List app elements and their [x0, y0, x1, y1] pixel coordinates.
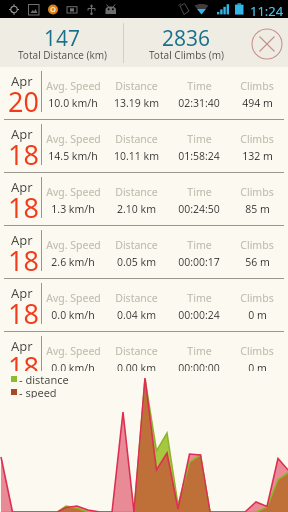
staticText: Avg. Speed [46, 344, 101, 358]
staticText: 56 m [245, 255, 270, 269]
staticText: Time [187, 79, 212, 93]
staticText: Apr [11, 337, 33, 355]
button[interactable]: 147 [2, 18, 123, 67]
staticText: 13.19 km [114, 96, 159, 110]
staticText: Distance [115, 344, 158, 358]
staticText: 494 m [242, 96, 273, 110]
staticText: 10.0 km/h [48, 96, 98, 110]
staticText: Distance [115, 291, 158, 305]
staticText: 0.04 km [117, 308, 156, 322]
staticText: Time [187, 238, 212, 252]
staticText: Apr [11, 231, 33, 249]
staticText: 00:00:00 [178, 361, 220, 371]
staticText: 147 [44, 24, 81, 53]
staticText: 11:24 [250, 2, 284, 20]
staticText: 1.3 km/h [51, 202, 95, 216]
staticText: 00:24:50 [178, 202, 220, 216]
staticText: Distance [115, 132, 158, 146]
staticText: Avg. Speed [46, 238, 101, 252]
button[interactable]: Apr [0, 226, 288, 278]
staticText: Avg. Speed [46, 291, 101, 305]
staticText: Avg. Speed [46, 79, 101, 93]
staticText: 02:31:40 [178, 96, 220, 110]
staticText: 18 [8, 295, 39, 332]
staticText: 85 m [245, 202, 270, 216]
staticText: Climbs [240, 79, 274, 93]
staticText: Distance [115, 238, 158, 252]
staticText: 0 m [248, 308, 267, 322]
staticText: 18 [8, 136, 39, 173]
button[interactable]: Apr [0, 279, 288, 331]
staticText: 18 [8, 348, 39, 371]
button[interactable]: Apr [0, 67, 288, 119]
staticText: 18 [8, 189, 39, 226]
button[interactable]: Apr [0, 120, 288, 172]
staticText: 0.05 km [117, 255, 156, 269]
staticText: 01:58:24 [178, 149, 220, 163]
staticText: Avg. Speed [46, 132, 101, 146]
staticText: Apr [11, 284, 33, 302]
staticText: Time [187, 132, 212, 146]
staticText: 0.0 km/h [51, 361, 95, 371]
staticText: Avg. Speed [46, 185, 101, 199]
staticText: Climbs [240, 238, 274, 252]
staticText: 132 m [242, 149, 273, 163]
staticText: Distance [115, 185, 158, 199]
staticText: 0.0 km/h [51, 308, 95, 322]
staticText: Climbs [240, 291, 274, 305]
button[interactable]: Apr [0, 332, 288, 371]
staticText: Apr [11, 178, 33, 196]
staticText: - distance [19, 372, 69, 385]
staticText: Total Climbs (m) [149, 48, 225, 62]
staticText: 2.6 km/h [51, 255, 95, 269]
staticText: Apr [11, 72, 33, 90]
staticText: 00:00:17 [178, 255, 220, 269]
button[interactable]: 2836 [124, 18, 249, 67]
staticText: 0 m [248, 361, 267, 371]
staticText: 10.11 km [114, 149, 159, 163]
staticText: 18 [8, 242, 39, 279]
staticText: Time [187, 344, 212, 358]
staticText: Distance [115, 79, 158, 93]
button[interactable]: Apr [0, 173, 288, 225]
staticText: 2836 [162, 24, 211, 53]
staticText: 14.5 km/h [48, 149, 98, 163]
staticText: 2.10 km [117, 202, 156, 216]
staticText: - speed [19, 385, 57, 398]
staticText: 00:00:24 [178, 308, 220, 322]
staticText: 0.00 km [117, 361, 156, 371]
button[interactable]: Close [251, 28, 283, 60]
staticText: Time [187, 185, 212, 199]
staticText: Total Distance (km) [18, 48, 108, 62]
staticText: Climbs [240, 185, 274, 199]
staticText: Climbs [240, 132, 274, 146]
staticText: Climbs [240, 344, 274, 358]
staticText: Apr [11, 125, 33, 143]
staticText: 20 [8, 83, 39, 120]
staticText: Time [187, 291, 212, 305]
